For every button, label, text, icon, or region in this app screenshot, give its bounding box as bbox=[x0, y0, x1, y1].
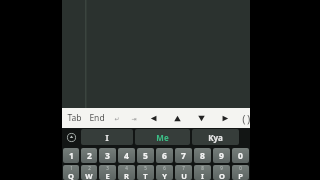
staticText: O bbox=[219, 171, 225, 180]
staticText: ⇥ bbox=[131, 115, 137, 122]
button[interactable]: Cursor down bbox=[196, 108, 207, 128]
button[interactable]: Me bbox=[135, 129, 190, 145]
button[interactable]: Tab bbox=[67, 108, 82, 128]
staticText: W bbox=[85, 171, 93, 180]
button[interactable]: ↵ bbox=[114, 108, 120, 128]
staticText: 1 bbox=[70, 165, 73, 171]
button[interactable]: Voice input bbox=[64, 129, 79, 145]
button[interactable]: Kya bbox=[192, 129, 239, 145]
staticText: 5 bbox=[144, 165, 147, 171]
button[interactable]: End bbox=[89, 108, 105, 128]
button[interactable]: Cursor up bbox=[172, 108, 183, 128]
staticText: 2 bbox=[87, 150, 92, 162]
button[interactable]: 9 bbox=[213, 148, 230, 163]
staticText: 4 bbox=[125, 165, 128, 171]
staticText: 0 bbox=[239, 165, 242, 171]
button[interactable]: 5 bbox=[137, 148, 154, 163]
button[interactable]: 7 bbox=[175, 148, 192, 163]
button[interactable]: 1 bbox=[63, 165, 79, 180]
staticText: End bbox=[89, 112, 105, 124]
staticText: 3 bbox=[105, 150, 110, 162]
button[interactable]: ⇥ bbox=[131, 108, 137, 128]
staticText: P bbox=[238, 171, 243, 180]
button[interactable]: 9 bbox=[213, 165, 230, 180]
button[interactable]: 4 bbox=[118, 148, 135, 163]
staticText: 6 bbox=[163, 165, 166, 171]
button[interactable]: 4 bbox=[118, 165, 135, 180]
staticText: ( bbox=[242, 111, 246, 126]
staticText: Kya bbox=[208, 132, 223, 143]
staticText: Tab bbox=[67, 112, 82, 124]
staticText: T bbox=[143, 171, 148, 180]
staticText: 1 bbox=[69, 150, 74, 162]
button[interactable]: 2 bbox=[81, 148, 97, 163]
staticText: 7 bbox=[182, 165, 185, 171]
button[interactable]: 3 bbox=[99, 148, 116, 163]
staticText: Q bbox=[68, 171, 74, 180]
staticText: I bbox=[201, 171, 204, 180]
staticText: 4 bbox=[124, 150, 129, 162]
button[interactable]: ( bbox=[242, 108, 246, 128]
staticText: U bbox=[181, 171, 187, 180]
staticText: 6 bbox=[162, 150, 167, 162]
staticText: R bbox=[124, 171, 129, 180]
staticText: 2 bbox=[88, 165, 91, 171]
staticText: 3 bbox=[106, 165, 109, 171]
staticText: 9 bbox=[219, 150, 224, 162]
button[interactable]: 5 bbox=[137, 165, 154, 180]
staticText: 7 bbox=[181, 150, 186, 162]
staticText: 9 bbox=[220, 165, 223, 171]
button[interactable]: 6 bbox=[156, 148, 173, 163]
button[interactable]: 8 bbox=[194, 148, 211, 163]
staticText: 0 bbox=[238, 150, 243, 162]
button[interactable]: 1 bbox=[63, 148, 79, 163]
button[interactable]: 0 bbox=[232, 148, 249, 163]
button[interactable]: 3 bbox=[99, 165, 116, 180]
staticText: 8 bbox=[200, 150, 205, 162]
button[interactable]: Cursor right bbox=[220, 108, 231, 128]
button[interactable]: 7 bbox=[175, 165, 192, 180]
button[interactable]: 8 bbox=[194, 165, 211, 180]
staticText: ↵ bbox=[114, 115, 120, 122]
staticText: I bbox=[105, 132, 109, 143]
staticText: 5 bbox=[143, 150, 148, 162]
staticText: Y bbox=[162, 171, 167, 180]
button[interactable]: I bbox=[81, 129, 133, 145]
staticText: Me bbox=[156, 132, 169, 143]
button[interactable]: Cursor left bbox=[148, 108, 159, 128]
button[interactable]: 6 bbox=[156, 165, 173, 180]
staticText: 8 bbox=[201, 165, 204, 171]
button[interactable]: 0 bbox=[232, 165, 249, 180]
staticText: E bbox=[105, 171, 110, 180]
button[interactable]: 2 bbox=[81, 165, 97, 180]
